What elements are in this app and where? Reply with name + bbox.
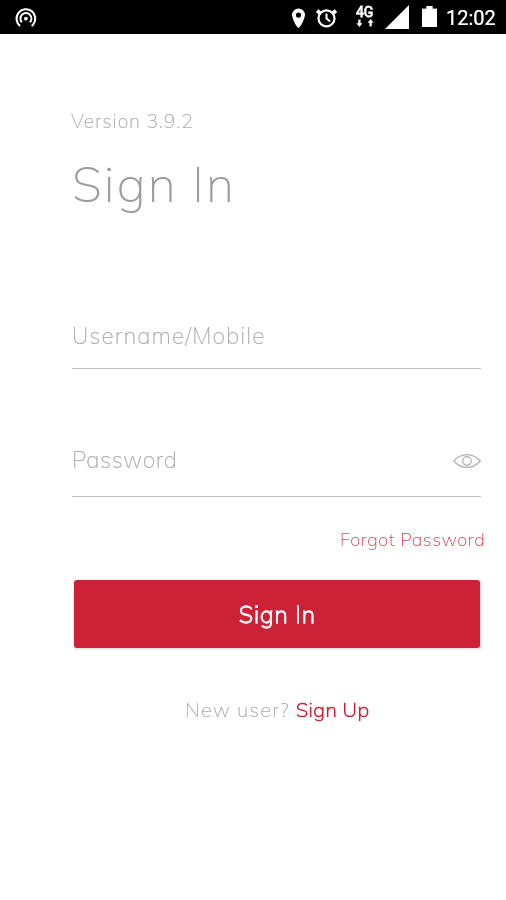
staticText: Sign In bbox=[239, 600, 316, 629]
staticText: Password bbox=[72, 445, 178, 473]
button[interactable]: Sign In bbox=[74, 580, 480, 648]
button[interactable]: Show password bbox=[449, 443, 484, 478]
staticText: Version 3.9.2 bbox=[71, 109, 194, 133]
button[interactable]: Forgot Password bbox=[332, 520, 494, 559]
staticText: Username/Mobile bbox=[72, 321, 266, 349]
staticText: Sign In bbox=[72, 153, 237, 214]
staticText: Sign Up bbox=[296, 697, 370, 722]
staticText: New user? bbox=[185, 697, 296, 722]
staticText: Forgot Password bbox=[340, 528, 486, 551]
staticText: 4G bbox=[356, 4, 374, 20]
staticText: 12:02 bbox=[446, 6, 496, 29]
button[interactable]: New user? bbox=[179, 691, 376, 728]
